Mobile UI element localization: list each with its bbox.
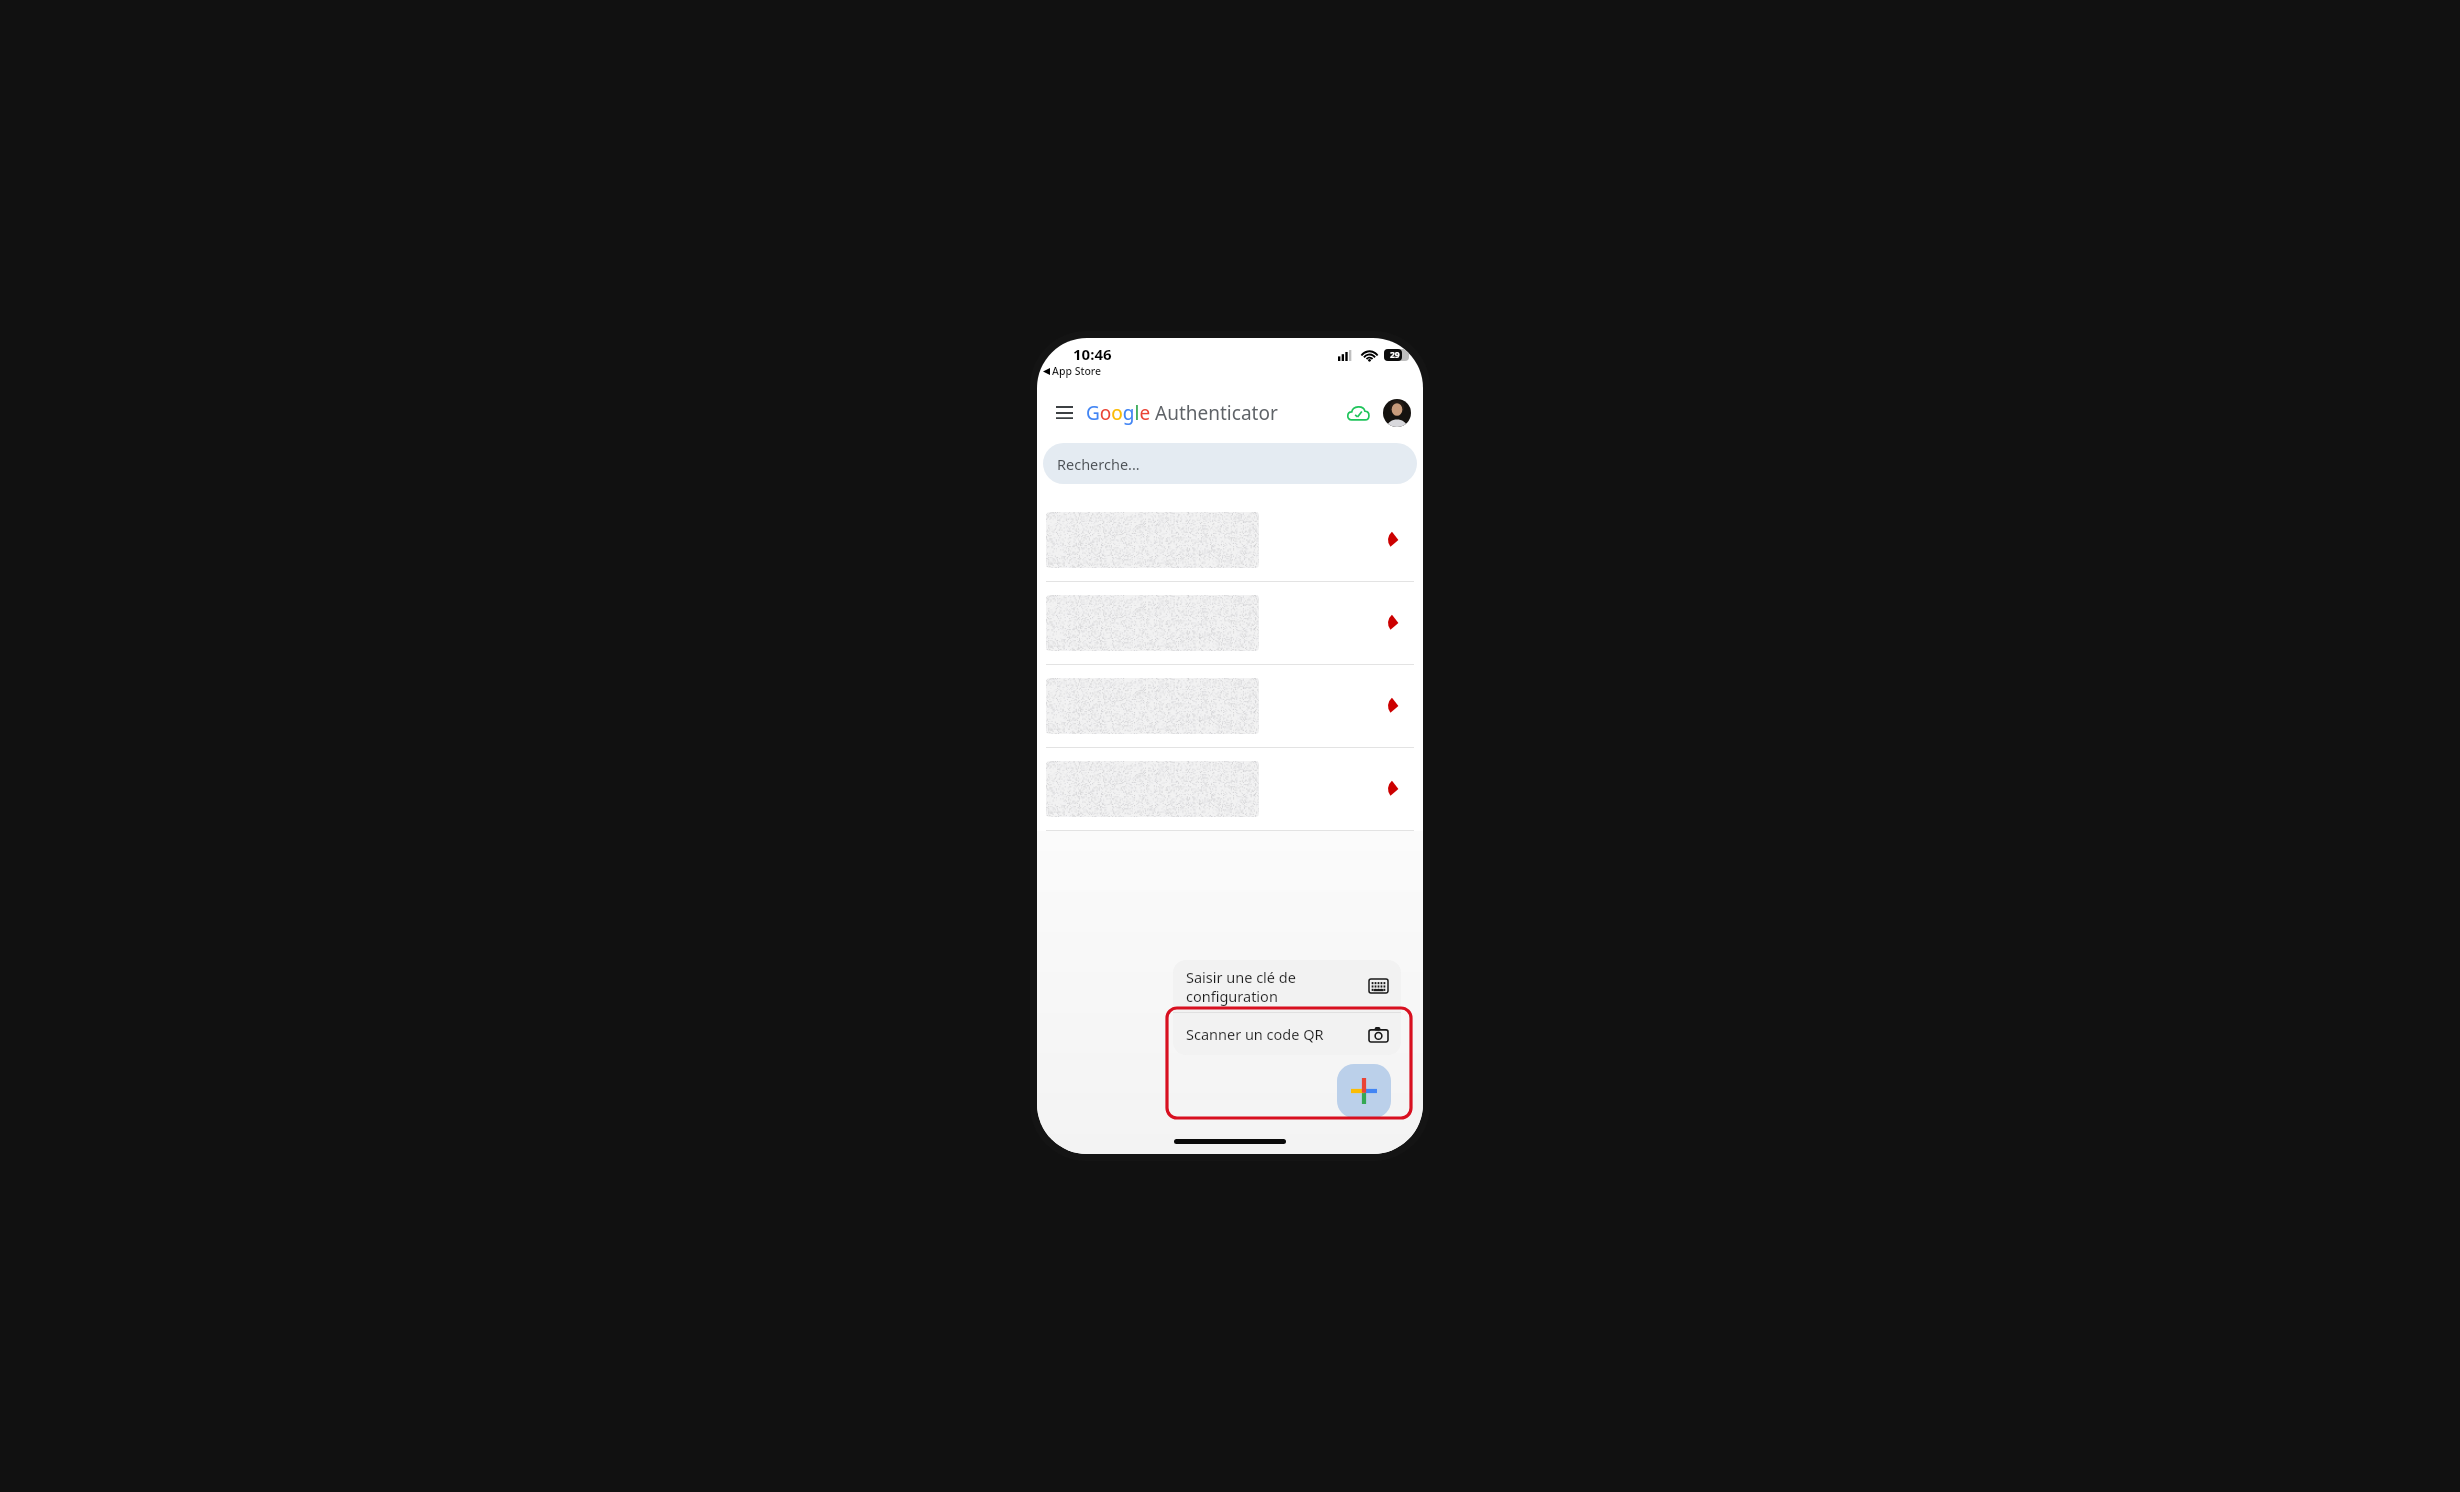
staticText: 29 bbox=[1390, 349, 1400, 361]
button[interactable] bbox=[1037, 499, 1423, 581]
button[interactable]: Sync bbox=[1341, 396, 1375, 430]
button[interactable]: Add bbox=[1337, 1064, 1391, 1118]
button[interactable]: Saisir une clé de configuration bbox=[1173, 960, 1401, 1012]
staticText: Saisir une clé de configuration bbox=[1186, 967, 1361, 1006]
button[interactable] bbox=[1037, 582, 1423, 664]
staticText: Scanner un code QR bbox=[1186, 1024, 1361, 1044]
button[interactable]: Scanner un code QR bbox=[1173, 1013, 1401, 1055]
staticText: Google Authenticator bbox=[1086, 400, 1278, 426]
button[interactable]: Recherche... bbox=[1043, 443, 1417, 484]
button[interactable]: Account bbox=[1383, 399, 1411, 427]
button[interactable]: Menu bbox=[1049, 398, 1079, 428]
button[interactable] bbox=[1037, 748, 1423, 830]
button[interactable] bbox=[1037, 665, 1423, 747]
staticText: 10:46 bbox=[1073, 344, 1112, 364]
staticText: App Store bbox=[1052, 364, 1102, 378]
staticText: Recherche... bbox=[1057, 454, 1140, 474]
